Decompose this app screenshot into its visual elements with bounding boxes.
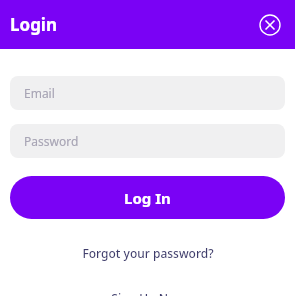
button[interactable]: Close xyxy=(257,12,283,38)
staticText: Log In xyxy=(124,188,171,208)
staticText: Login xyxy=(10,13,58,36)
button[interactable]: Sign Up Now xyxy=(10,286,285,300)
staticText: Sign Up Now xyxy=(111,290,185,296)
button[interactable]: Password xyxy=(10,124,285,158)
button[interactable]: Log In xyxy=(10,176,285,219)
staticText: Email xyxy=(24,85,55,101)
button[interactable]: Email xyxy=(10,76,285,110)
staticText: Forgot your password? xyxy=(82,245,214,261)
button[interactable]: Forgot your password? xyxy=(10,241,285,265)
staticText: Password xyxy=(24,133,79,149)
